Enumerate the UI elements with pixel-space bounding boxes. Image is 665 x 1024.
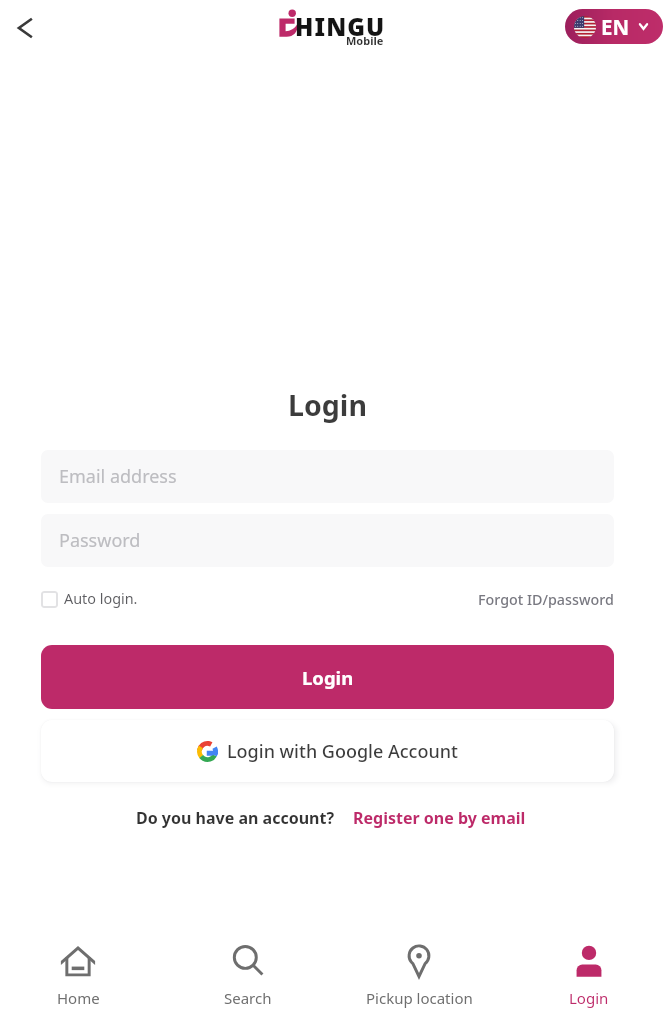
staticText: Do you have an account? (136, 807, 335, 829)
staticText: HINGU (295, 10, 386, 43)
button[interactable]: Register one by email (353, 807, 526, 829)
staticText: Email address (59, 464, 177, 489)
staticText: Login (569, 988, 609, 1008)
staticText: Mobile (346, 33, 384, 48)
button[interactable]: Search (173, 927, 323, 1008)
staticText: Home (57, 988, 100, 1008)
button[interactable]: Login (514, 927, 664, 1008)
staticText: Pickup location (366, 988, 473, 1008)
button[interactable]: Forgot ID/password (478, 590, 614, 609)
button[interactable]: Back (3, 6, 47, 50)
staticText: EN (601, 13, 630, 41)
button[interactable]: Home (3, 927, 153, 1008)
staticText: Login with Google Account (227, 739, 458, 764)
button[interactable]: Pickup location (344, 927, 494, 1008)
button[interactable]: Auto login. (41, 589, 138, 609)
button[interactable]: Email address (41, 450, 614, 503)
button[interactable]: EN (565, 9, 663, 44)
button[interactable]: Password (41, 514, 614, 567)
staticText: Search (224, 988, 272, 1008)
staticText: Login (302, 665, 354, 690)
staticText: Auto login. (64, 589, 138, 609)
button[interactable]: Login (41, 645, 614, 709)
button[interactable]: Login with Google Account (41, 720, 614, 782)
staticText: Password (59, 528, 141, 553)
staticText: Login (41, 386, 614, 425)
